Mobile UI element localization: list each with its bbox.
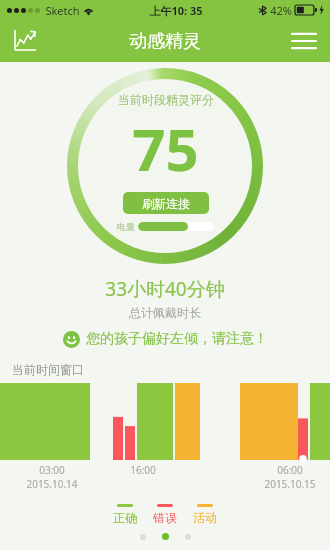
staticText: 错误 (153, 510, 177, 525)
button[interactable]: Page 2 (162, 533, 169, 540)
staticText: 75 (132, 109, 199, 188)
staticText: 动感精灵 (129, 30, 201, 53)
staticText: 正确 (113, 510, 137, 525)
staticText: 总计佩戴时长 (129, 305, 201, 320)
button[interactable]: 正确 (113, 504, 137, 525)
button[interactable]: 错误 (153, 504, 177, 525)
staticText: 16:00 (130, 463, 156, 477)
button[interactable]: 活动 (193, 504, 217, 525)
staticText: 42% (270, 3, 292, 18)
staticText: 03:00 (39, 463, 65, 477)
staticText: 刷新连接 (142, 196, 190, 211)
staticText: 当前时间窗口 (12, 362, 84, 377)
button[interactable]: Statistics (8, 24, 42, 58)
staticText: 电量 (117, 221, 135, 232)
staticText: 33小时40分钟 (105, 276, 225, 302)
staticText: 上午10: 35 (149, 3, 203, 18)
staticText: 2015.10.15 (264, 477, 316, 491)
button[interactable]: Menu (286, 23, 322, 59)
staticText: 当前时段精灵评分 (118, 92, 214, 107)
staticText: 06:00 (277, 463, 303, 477)
staticText: Sketch (45, 3, 80, 18)
button[interactable]: Page 1 (140, 534, 146, 540)
button[interactable]: 刷新连接 (123, 192, 209, 214)
button[interactable]: Page 3 (185, 534, 191, 540)
staticText: 活动 (193, 510, 217, 525)
staticText: 2015.10.14 (26, 477, 78, 491)
staticText: 您的孩子偏好左倾，请注意！ (86, 330, 268, 348)
